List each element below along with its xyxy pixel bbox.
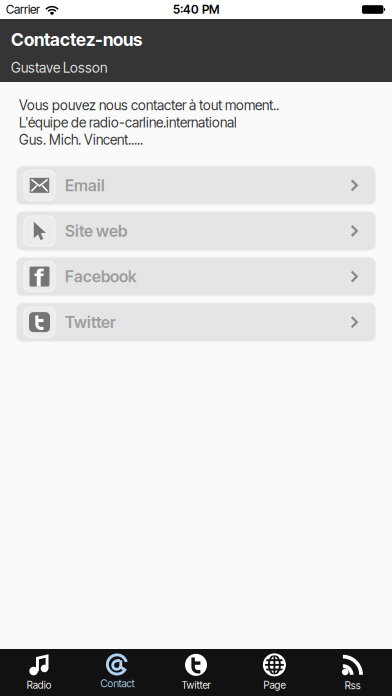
- button[interactable]: Email: [16, 166, 375, 205]
- button[interactable]: Twitter: [157, 649, 235, 696]
- staticText: Rss: [345, 679, 361, 692]
- button[interactable]: Radio: [0, 649, 78, 696]
- staticText: Contactez-nous: [11, 29, 142, 50]
- button[interactable]: Facebook: [16, 257, 375, 296]
- staticText: Site web: [65, 221, 127, 241]
- staticText: Gus. Mich. Vincent.....: [19, 131, 143, 148]
- button[interactable]: Contact: [78, 649, 157, 696]
- staticText: Twitter: [65, 312, 116, 332]
- button[interactable]: Site web: [16, 212, 375, 250]
- staticText: Email: [65, 176, 105, 195]
- button[interactable]: Twitter: [16, 303, 375, 341]
- button[interactable]: Rss: [314, 649, 392, 696]
- staticText: Facebook: [65, 267, 137, 286]
- staticText: Radio: [27, 679, 52, 691]
- staticText: Vous pouvez nous contacter à tout moment…: [19, 97, 279, 114]
- staticText: Gustave Losson: [11, 59, 107, 76]
- staticText: Contact: [101, 677, 135, 690]
- staticText: L'équipe de radio-carline.international: [19, 114, 237, 131]
- button[interactable]: Page: [235, 649, 314, 696]
- staticText: Twitter: [181, 679, 210, 691]
- staticText: 5:40 PM: [173, 2, 219, 17]
- staticText: Carrier: [6, 2, 40, 17]
- staticText: Page: [263, 679, 285, 691]
